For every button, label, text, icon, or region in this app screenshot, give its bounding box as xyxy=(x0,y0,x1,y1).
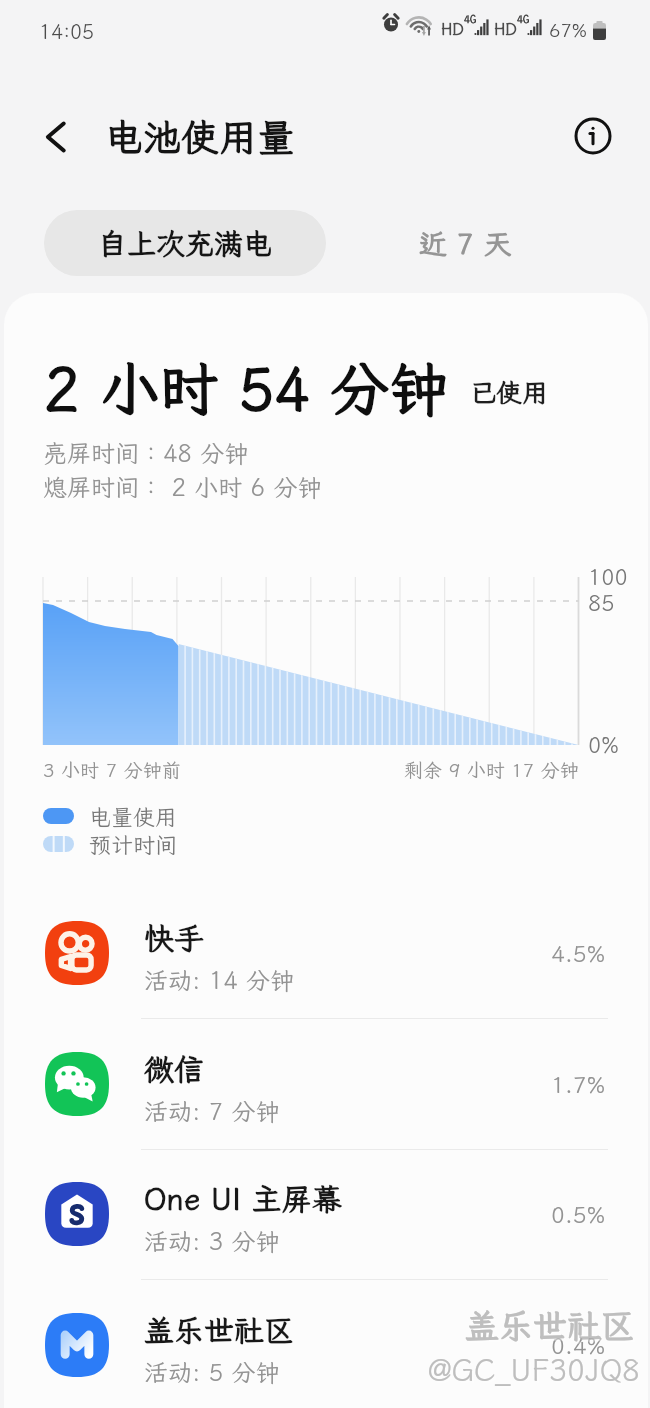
staticText: 快手 xyxy=(144,918,204,958)
staticText: 4.5% xyxy=(551,938,606,968)
button[interactable]: Back xyxy=(33,113,81,161)
staticText: 67% xyxy=(549,17,588,42)
staticText: 电量使用 xyxy=(89,802,178,831)
staticText: 0.4% xyxy=(551,1330,606,1360)
button[interactable]: 盖乐世社区 xyxy=(0,1280,650,1408)
staticText: 100 xyxy=(588,562,628,591)
staticText: One UI 主屏幕 xyxy=(144,1179,342,1219)
staticText: 盖乐世社区 xyxy=(144,1310,294,1350)
staticText: 电池使用量 xyxy=(105,112,296,162)
staticText: @GC_UF30JQ8 xyxy=(428,1350,641,1390)
staticText: 剩余 9 小时 17 分钟 xyxy=(404,757,579,782)
staticText: 盖乐世社区 xyxy=(465,1303,635,1348)
staticText: 微信 xyxy=(144,1049,204,1089)
staticText: 0% xyxy=(588,730,619,759)
staticText: 14:05 xyxy=(39,18,94,44)
staticText: 活动: 14 分钟 xyxy=(144,964,294,996)
staticText: @GC_UF30JQ8 xyxy=(430,1352,643,1392)
staticText: 活动: 3 分钟 xyxy=(144,1225,280,1257)
staticText: 活动: 7 分钟 xyxy=(144,1095,280,1127)
staticText: HD xyxy=(494,18,517,39)
staticText: 85 xyxy=(588,588,615,617)
staticText: 2 小时 54 分钟 xyxy=(44,349,449,427)
staticText: 已使用 xyxy=(470,375,549,409)
staticText: 活动: 5 分钟 xyxy=(144,1356,280,1388)
staticText: 自上次充满电 xyxy=(98,224,273,262)
button[interactable]: Information xyxy=(573,116,613,156)
staticText: 1.7% xyxy=(551,1069,606,1099)
button[interactable]: One UI 主屏幕 xyxy=(0,1149,650,1279)
staticText: 亮屏时间：48 分钟 xyxy=(43,437,249,469)
staticText: 预计时间 xyxy=(89,830,178,859)
staticText: 0.5% xyxy=(551,1199,606,1229)
staticText: 盖乐世社区 xyxy=(467,1305,637,1350)
staticText: 近 7 天 xyxy=(419,225,512,262)
staticText: 熄屏时间： 2 小时 6 分钟 xyxy=(43,471,322,503)
button[interactable]: 快手 xyxy=(0,888,650,1018)
staticText: HD xyxy=(441,18,464,39)
button[interactable]: 微信 xyxy=(0,1019,650,1149)
staticText: 3 小时 7 分钟前 xyxy=(43,757,181,782)
button[interactable]: 近 7 天 xyxy=(330,210,600,276)
button[interactable]: 自上次充满电 xyxy=(44,210,326,276)
